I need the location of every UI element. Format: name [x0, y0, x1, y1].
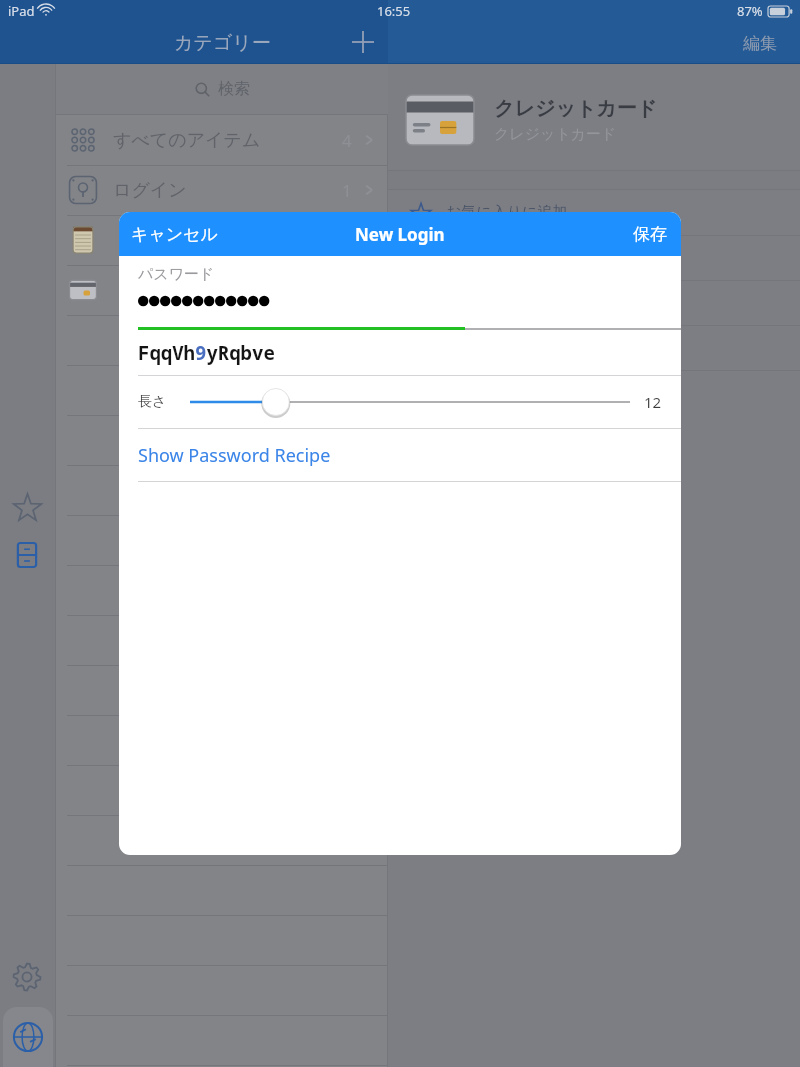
staticText: iPad — [8, 2, 35, 20]
staticText: 保存 — [633, 224, 667, 245]
button[interactable] — [56, 265, 388, 315]
button[interactable]: ログイン — [56, 165, 388, 215]
button[interactable]: FqqVh9yRqbve — [119, 331, 681, 375]
button[interactable]: 編集 — [730, 22, 790, 64]
button[interactable]: クレジットカード — [388, 70, 800, 170]
button[interactable]: Settings — [11, 961, 43, 993]
button[interactable] — [56, 215, 388, 265]
staticText: Show Password Recipe — [138, 443, 331, 468]
staticText: FqqVh9yRqbve — [138, 340, 275, 366]
staticText: 87% — [737, 2, 763, 20]
button[interactable]: すべてのアイテム — [56, 115, 388, 165]
staticText: クレジットカード — [494, 125, 617, 144]
staticText: 長さ — [138, 393, 167, 411]
button[interactable]: パスワード — [119, 256, 681, 327]
staticText: 12 — [644, 392, 662, 412]
staticText: すべてのアイテム — [113, 129, 261, 152]
button[interactable]: 長さ — [119, 376, 681, 428]
button[interactable]: Show Password Recipe — [119, 429, 681, 481]
button[interactable]: Browser — [3, 1007, 53, 1067]
staticText: 4 — [342, 129, 352, 152]
staticText: 編集 — [743, 33, 777, 54]
staticText: お気に入りに追加 — [446, 203, 568, 222]
button[interactable]: Add category — [343, 22, 383, 62]
button[interactable]: Favorites — [12, 492, 43, 523]
staticText: 16:55 — [377, 2, 411, 20]
staticText: ログイン — [113, 179, 187, 202]
staticText: New Login — [355, 223, 445, 246]
button[interactable]: 保存 — [633, 212, 667, 256]
button[interactable]: お気に入りに追加 — [388, 190, 800, 235]
staticText: パスワード — [138, 265, 215, 284]
button[interactable]: Vaults — [15, 543, 39, 567]
staticText: クレジットカード — [494, 96, 658, 121]
staticText: カテゴリー — [174, 31, 271, 55]
staticText: キャンセル — [131, 224, 218, 245]
button[interactable]: キャンセル — [131, 212, 218, 256]
staticText: 検索 — [218, 79, 250, 99]
staticText: 1 — [342, 179, 352, 202]
